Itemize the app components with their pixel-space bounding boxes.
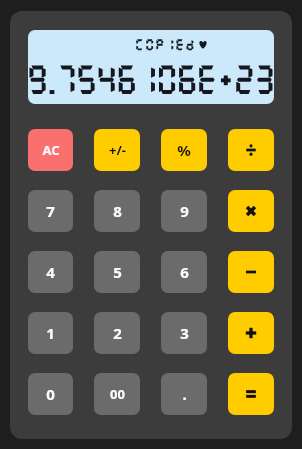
staticText: 5	[113, 262, 122, 282]
button[interactable]: 1	[28, 312, 73, 354]
staticText: 0	[46, 384, 55, 404]
button[interactable]: %	[161, 129, 207, 171]
button[interactable]: 7	[28, 190, 73, 232]
staticText: 8	[113, 201, 122, 221]
staticText: 6	[180, 262, 189, 282]
staticText: %	[177, 140, 191, 160]
staticText: .	[182, 384, 187, 404]
button[interactable]: 2	[94, 312, 140, 354]
button[interactable]: 00	[94, 373, 140, 415]
button[interactable]: 0	[28, 373, 73, 415]
button[interactable]: Minus	[228, 251, 274, 293]
staticText: +/-	[109, 141, 126, 159]
staticText: 7	[46, 201, 55, 221]
staticText: 2	[113, 323, 122, 343]
button[interactable]: 5	[94, 251, 140, 293]
staticText: 00	[110, 385, 125, 403]
staticText: 9	[180, 201, 189, 221]
staticText: AC	[42, 141, 60, 159]
button[interactable]: 4	[28, 251, 73, 293]
button[interactable]: Divide	[228, 129, 274, 171]
button[interactable]: Multiply	[228, 190, 274, 232]
button[interactable]: Plus	[228, 312, 274, 354]
button[interactable]: +/-	[94, 129, 140, 171]
button[interactable]: 8	[94, 190, 140, 232]
button[interactable]: 3	[161, 312, 207, 354]
button[interactable]: AC	[28, 129, 73, 171]
staticText: 3	[180, 323, 189, 343]
button[interactable]: Equals	[228, 373, 274, 415]
button[interactable]: 9	[161, 190, 207, 232]
staticText: 1	[46, 323, 55, 343]
button[interactable]: .	[161, 373, 207, 415]
button[interactable]: 6	[161, 251, 207, 293]
staticText: 4	[46, 262, 55, 282]
